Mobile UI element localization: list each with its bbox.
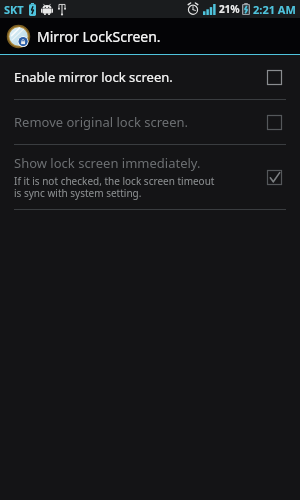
staticText: Mirror LockScreen.	[37, 27, 161, 46]
other: Unchecked	[267, 115, 282, 130]
staticText: Enable mirror lock screen.	[14, 68, 173, 86]
staticText: Show lock screen immediately.	[14, 154, 201, 172]
button[interactable]: Remove original lock screen.	[0, 100, 300, 144]
other: Checked	[267, 170, 282, 185]
staticText: 2:21 AM	[253, 2, 296, 17]
button[interactable]: Enable mirror lock screen.	[0, 55, 300, 99]
other: Unchecked	[267, 70, 282, 85]
button[interactable]: App icon	[0, 18, 300, 54]
button[interactable]: Show lock screen immediately.	[0, 145, 300, 209]
staticText: If it is not checked, the lock screen ti…	[14, 174, 215, 200]
other: App icon	[7, 25, 30, 48]
staticText: 21%	[219, 2, 240, 16]
staticText: SKT	[4, 2, 24, 17]
staticText: Remove original lock screen.	[14, 113, 189, 131]
